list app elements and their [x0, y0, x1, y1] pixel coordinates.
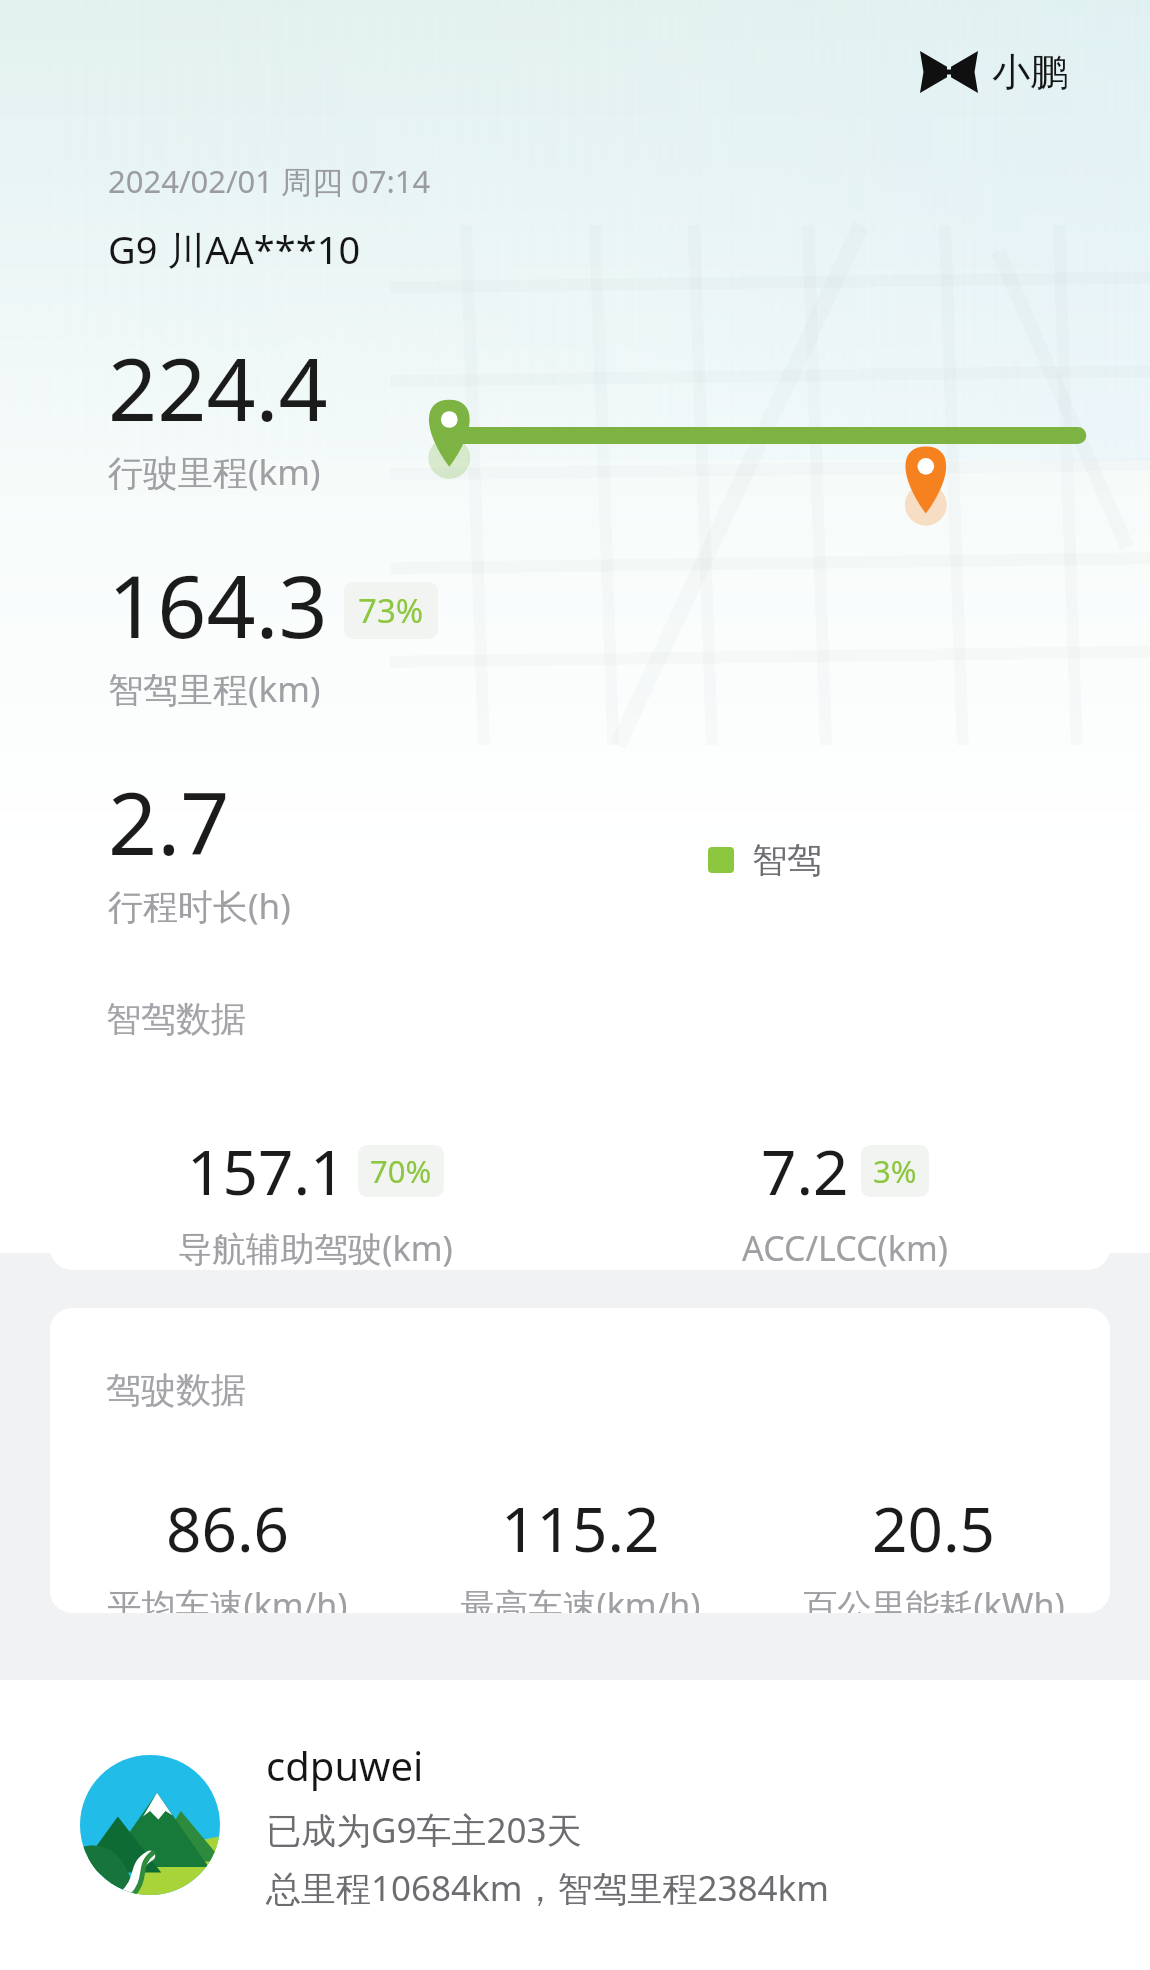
staticText: 总里程10684km，智驾里程2384km	[266, 1864, 830, 1912]
staticText: 20.5	[872, 1486, 996, 1570]
staticText: G9 川AA***10	[108, 223, 361, 275]
button[interactable]: XPeng	[920, 48, 1068, 96]
staticText: 导航辅助驾驶(km)	[178, 1225, 453, 1270]
staticText: 70%	[370, 1150, 432, 1192]
staticText: 智驾里程(km)	[108, 665, 321, 713]
staticText: 73%	[358, 588, 424, 633]
button[interactable]: cdpuwei	[80, 1738, 1150, 1912]
staticText: 最高车速(km/h)	[460, 1582, 701, 1613]
staticText: 2024/02/01 周四 07:14	[108, 160, 431, 202]
staticText: ACC/LCC(km)	[742, 1225, 948, 1270]
staticText: 164.3	[108, 546, 328, 663]
staticText: 智驾数据	[106, 997, 246, 1041]
button[interactable]: 智驾	[708, 838, 822, 882]
staticText: 驾驶数据	[106, 1368, 246, 1412]
staticText: 115.2	[501, 1486, 660, 1570]
staticText: 百公里能耗(kWh)	[803, 1582, 1065, 1613]
button[interactable]: 驾驶数据	[50, 1308, 1110, 1613]
staticText: 86.6	[166, 1486, 290, 1570]
staticText: cdpuwei	[266, 1738, 424, 1792]
staticText: 157.1	[187, 1129, 346, 1213]
staticText: 小鹏	[992, 48, 1068, 96]
staticText: 平均车速(km/h)	[107, 1582, 348, 1613]
staticText: 2.7	[108, 763, 230, 880]
staticText: 智驾	[752, 838, 822, 882]
staticText: 224.4	[108, 329, 328, 446]
staticText: 行驶里程(km)	[108, 448, 321, 496]
staticText: 3%	[873, 1150, 917, 1192]
button[interactable]: 智驾数据	[50, 933, 1110, 1270]
staticText: 已成为G9车主203天	[266, 1806, 582, 1854]
staticText: 7.2	[761, 1129, 849, 1213]
staticText: 行程时长(h)	[108, 882, 291, 930]
